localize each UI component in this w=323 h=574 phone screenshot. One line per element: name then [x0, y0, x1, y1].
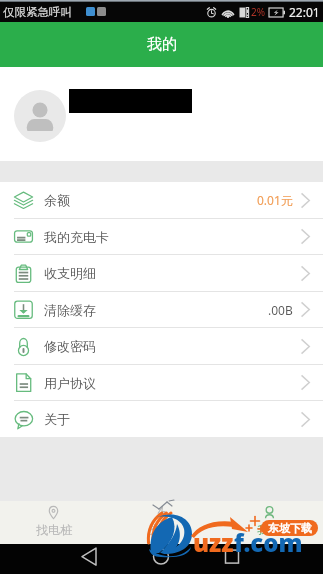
staticText: 2% — [251, 5, 266, 19]
button[interactable]: 充电 — [107, 501, 215, 544]
staticText: 我的 — [257, 523, 281, 538]
staticText: 我的充电卡 — [44, 229, 109, 245]
button[interactable]: 收支明细 — [0, 255, 323, 291]
button[interactable]: 我的 — [215, 501, 323, 544]
button[interactable]: 找电桩 — [0, 501, 107, 544]
button[interactable]: 修改密码 — [0, 328, 323, 364]
staticText: 清除缓存 — [44, 302, 96, 318]
staticText: 关于 — [44, 411, 70, 427]
button[interactable]: 用户协议 — [0, 365, 323, 400]
button[interactable]: 清除缓存 — [0, 292, 323, 327]
button[interactable]: 余额 — [0, 182, 323, 218]
staticText: 用户协议 — [44, 375, 96, 391]
button[interactable]: 关于 — [0, 401, 323, 437]
staticText: 充电 — [149, 523, 173, 538]
staticText: uzz — [193, 526, 234, 559]
staticText: 0.01元 — [257, 192, 293, 208]
staticText: 余额 — [44, 192, 70, 208]
button[interactable]: 我的充电卡 — [0, 219, 323, 254]
staticText: 22:01 — [289, 4, 320, 20]
button[interactable] — [0, 67, 323, 161]
staticText: 修改密码 — [44, 338, 96, 354]
staticText: f.com — [234, 526, 303, 559]
staticText: 收支明细 — [44, 265, 96, 281]
staticText: 仅限紧急呼叫 — [3, 5, 72, 19]
staticText: 东坡下载 — [268, 521, 312, 535]
staticText: 我的 — [147, 35, 177, 54]
staticText: .00B — [268, 302, 293, 318]
staticText: 找电桩 — [36, 523, 72, 538]
